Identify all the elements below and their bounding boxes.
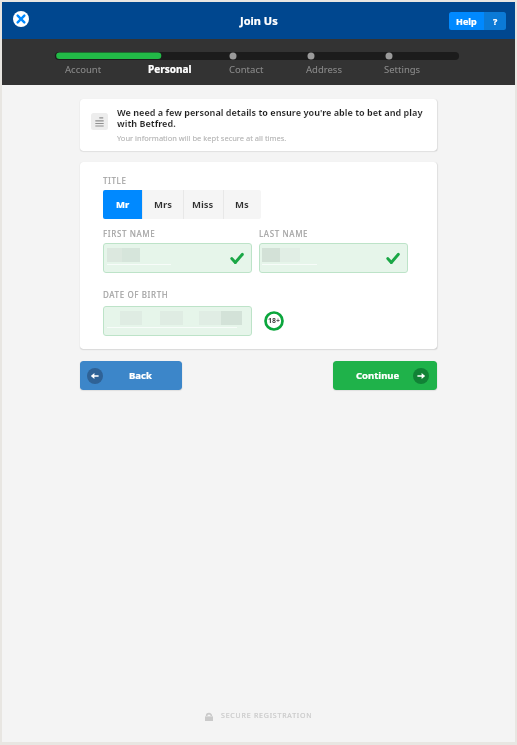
button[interactable]: Miss (183, 190, 223, 219)
staticText: Settings (384, 63, 421, 76)
button[interactable] (103, 306, 252, 336)
staticText: Join Us (240, 13, 278, 28)
staticText: DATE OF BIRTH (103, 289, 169, 300)
button[interactable]: Back (80, 361, 182, 390)
button[interactable]: Continue (333, 361, 437, 390)
button[interactable]: Contact (211, 60, 281, 78)
staticText: Contact (229, 63, 264, 76)
button[interactable]: Personal (135, 60, 205, 78)
staticText: Help (456, 15, 477, 27)
staticText: Account (65, 63, 102, 76)
staticText: Mr (116, 198, 130, 211)
staticText: Miss (192, 198, 214, 211)
button[interactable]: SECURE REGISTRATION (205, 711, 313, 721)
staticText: TITLE (103, 175, 127, 186)
button[interactable] (103, 243, 252, 273)
staticText: SECURE REGISTRATION (221, 711, 313, 721)
button[interactable]: Help (484, 12, 506, 30)
staticText: ? (493, 15, 498, 27)
button[interactable]: Mrs (142, 190, 183, 219)
staticText: Personal (148, 62, 192, 76)
staticText: Continue (356, 369, 400, 382)
staticText: We need a few personal details to ensure… (117, 106, 427, 130)
staticText: Ms (235, 198, 249, 211)
button[interactable]: Close (11, 9, 31, 29)
staticText: Your information will be kept secure at … (117, 133, 287, 143)
staticText: FIRST NAME (103, 228, 156, 239)
staticText: LAST NAME (259, 228, 309, 239)
button[interactable]: Help (449, 12, 484, 30)
button[interactable]: Settings (367, 60, 437, 78)
button[interactable]: Mr (103, 190, 142, 219)
staticText: Address (306, 63, 342, 76)
button[interactable] (259, 243, 408, 273)
button[interactable]: Account (48, 60, 118, 78)
staticText: Mrs (154, 198, 172, 211)
staticText: Back (129, 369, 152, 382)
button[interactable]: Ms (223, 190, 261, 219)
staticText: 18+ (268, 316, 281, 326)
button[interactable]: Address (289, 60, 359, 78)
